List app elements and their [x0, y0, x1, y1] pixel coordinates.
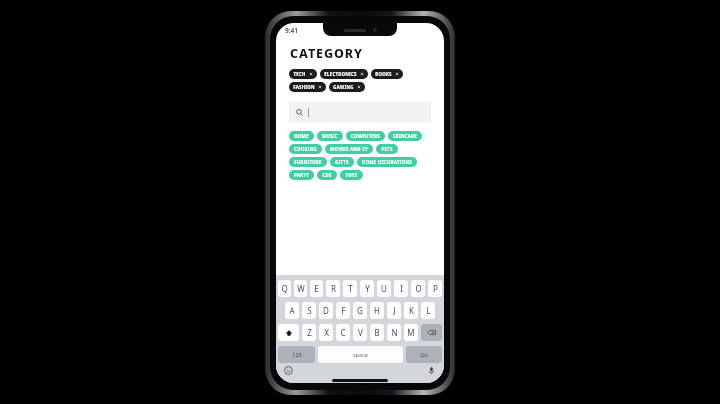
other: Remove BOOKS [395, 72, 399, 76]
staticText: L [426, 305, 431, 316]
staticText: U [381, 283, 387, 294]
button[interactable]: Z [302, 324, 316, 341]
staticText: PETS [381, 146, 393, 152]
button[interactable]: GIFTS [330, 157, 354, 167]
button[interactable]: U [377, 280, 391, 297]
button[interactable]: N [387, 324, 401, 341]
staticText: Y [365, 283, 370, 294]
staticText: R [331, 283, 336, 294]
button[interactable] [289, 101, 431, 123]
staticText: COOKING [294, 146, 317, 152]
staticText: HOME [294, 133, 309, 139]
staticText: PARTY [294, 172, 309, 178]
button[interactable]: COOKING [289, 144, 322, 154]
button[interactable]: H [370, 302, 384, 319]
staticText: G [357, 305, 363, 316]
button[interactable]: HOME [289, 131, 314, 141]
staticText: M [407, 327, 415, 338]
other: Remove FASHION [318, 85, 322, 89]
button[interactable]: E [310, 280, 323, 297]
staticText: SKINCARE [393, 133, 417, 139]
staticText: C [340, 327, 346, 338]
staticText: FURNITURE [294, 159, 322, 165]
staticText: ELECTRONICS [324, 71, 357, 77]
staticText: TOYS [345, 172, 358, 178]
other: Remove TECH [309, 72, 313, 76]
staticText: K [409, 305, 414, 316]
button[interactable]: O [411, 280, 425, 297]
staticText: MUSIC [322, 133, 338, 139]
staticText: J [393, 305, 396, 316]
staticText: N [391, 327, 398, 338]
staticText: V [358, 327, 363, 338]
button[interactable]: Shift [278, 324, 299, 341]
button[interactable]: MUSIC [317, 131, 343, 141]
button[interactable]: MOVIES AND TV [325, 144, 373, 154]
button[interactable]: I [394, 280, 408, 297]
button[interactable]: L [421, 302, 435, 319]
button[interactable]: Go [406, 346, 442, 363]
staticText: W [297, 283, 305, 294]
button[interactable]: BOOKS [371, 69, 403, 79]
staticText: TECH [293, 71, 306, 77]
button[interactable]: PETS [376, 144, 398, 154]
button[interactable]: Dictation [426, 365, 437, 376]
staticText: D [323, 305, 329, 316]
button[interactable]: Backspace [421, 324, 442, 341]
button[interactable]: X [319, 324, 333, 341]
button[interactable]: T [343, 280, 357, 297]
button[interactable]: M [404, 324, 418, 341]
button[interactable]: C [336, 324, 350, 341]
button[interactable]: space [318, 346, 403, 363]
button[interactable]: K [404, 302, 418, 319]
button[interactable]: CDS [317, 170, 337, 180]
staticText: 9:41 [285, 26, 298, 35]
staticText: X [324, 327, 329, 338]
staticText: MOVIES AND TV [330, 146, 368, 152]
staticText: O [415, 283, 422, 294]
staticText: Z [307, 327, 312, 338]
other: Remove ELECTRONICS [360, 72, 364, 76]
button[interactable]: A [285, 302, 299, 319]
button[interactable]: HOME DECORATIONS [357, 157, 417, 167]
button[interactable]: GAMING [329, 82, 365, 92]
staticText: GIFTS [335, 159, 349, 165]
button[interactable]: PARTY [289, 170, 314, 180]
staticText: I [400, 283, 403, 294]
staticText: COMPUTERS [351, 133, 380, 139]
button[interactable]: S [302, 302, 316, 319]
staticText: Q [281, 283, 288, 294]
button[interactable]: F [336, 302, 350, 319]
button[interactable]: FURNITURE [289, 157, 327, 167]
other: Remove GAMING [357, 85, 361, 89]
button[interactable]: G [353, 302, 367, 319]
button[interactable]: 123 [278, 346, 315, 363]
staticText: E [314, 283, 319, 294]
staticText: GAMING [333, 84, 354, 90]
button[interactable]: TECH [289, 69, 317, 79]
button[interactable]: W [294, 280, 307, 297]
staticText: CDS [322, 172, 332, 178]
staticText: P [433, 283, 438, 294]
staticText: B [374, 327, 380, 338]
button[interactable]: R [326, 280, 340, 297]
staticText: HOME DECORATIONS [362, 159, 412, 165]
button[interactable]: Q [278, 280, 291, 297]
button[interactable]: B [370, 324, 384, 341]
staticText: F [341, 305, 346, 316]
button[interactable]: D [319, 302, 333, 319]
button[interactable]: V [353, 324, 367, 341]
staticText: S [307, 305, 312, 316]
button[interactable]: SKINCARE [388, 131, 422, 141]
button[interactable]: FASHION [289, 82, 326, 92]
button[interactable]: Emoji keyboard [283, 365, 294, 376]
button[interactable]: P [428, 280, 442, 297]
button[interactable]: ELECTRONICS [320, 69, 368, 79]
button[interactable]: J [387, 302, 401, 319]
button[interactable]: COMPUTERS [346, 131, 385, 141]
staticText: 123 [292, 351, 302, 358]
button[interactable]: TOYS [340, 170, 363, 180]
staticText: CATEGORY [290, 45, 363, 62]
staticText: BOOKS [375, 71, 392, 77]
button[interactable]: Y [360, 280, 374, 297]
